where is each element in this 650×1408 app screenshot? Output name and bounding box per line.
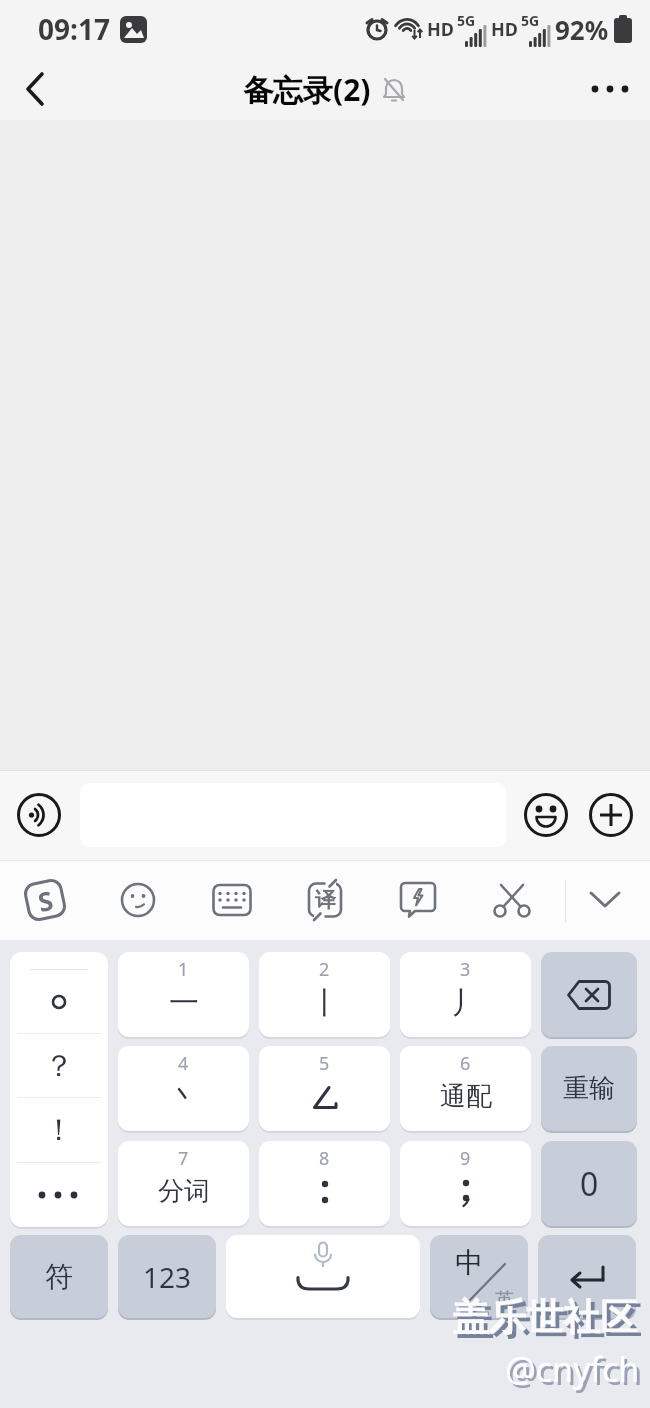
staticText: ！	[44, 1111, 74, 1149]
staticText: 中	[455, 1245, 483, 1280]
staticText: 2	[319, 957, 330, 982]
staticText: 一	[169, 984, 199, 1022]
staticText: HD	[427, 17, 454, 42]
button[interactable]: 5	[259, 1046, 390, 1131]
staticText: S	[35, 882, 56, 919]
button[interactable]	[541, 952, 637, 1037]
staticText: 92%	[555, 12, 609, 47]
staticText: 盖乐世社区	[456, 1298, 641, 1345]
staticText: 备忘录(2)	[243, 69, 371, 110]
button[interactable]	[538, 1235, 636, 1318]
button[interactable]: 123	[118, 1235, 216, 1318]
button[interactable]	[589, 793, 633, 837]
button[interactable]: 符	[10, 1235, 108, 1318]
button[interactable]: 6	[400, 1046, 531, 1131]
button[interactable]: 重输	[541, 1046, 637, 1131]
staticText: @cnyfch	[505, 1346, 640, 1392]
button[interactable]	[524, 793, 568, 837]
staticText: 5G	[521, 11, 540, 30]
staticText: 丨	[310, 984, 340, 1022]
staticText: 5G	[457, 11, 476, 30]
button[interactable]	[576, 871, 634, 929]
staticText: 通配	[440, 1080, 492, 1113]
button[interactable]: ！	[10, 1098, 108, 1162]
staticText: 1	[178, 957, 189, 982]
button[interactable]	[10, 1163, 108, 1227]
staticText: @cnyfch	[508, 1349, 643, 1395]
staticText: 丿	[451, 984, 481, 1022]
button[interactable]	[17, 793, 61, 837]
staticText: 符	[45, 1259, 73, 1294]
staticText: ？	[44, 1047, 74, 1085]
button[interactable]	[389, 871, 447, 929]
staticText: 丶	[169, 1078, 199, 1116]
button[interactable]: 0	[541, 1141, 637, 1226]
button[interactable]	[203, 871, 261, 929]
staticText: 英	[495, 1288, 514, 1312]
staticText: 译	[315, 887, 336, 913]
staticText: 5	[319, 1051, 330, 1076]
staticText: HD	[491, 17, 518, 42]
staticText: 分词	[158, 1175, 210, 1208]
button[interactable]: 译	[296, 871, 354, 929]
button[interactable]: 8	[259, 1141, 390, 1226]
button[interactable]: ？	[10, 1034, 108, 1097]
button[interactable]: 中	[430, 1235, 528, 1318]
button[interactable]: S	[16, 871, 74, 929]
button[interactable]	[10, 970, 108, 1033]
staticText: 0	[580, 1162, 599, 1206]
button[interactable]	[586, 65, 634, 113]
button[interactable]	[483, 871, 541, 929]
staticText: 盖乐世社区	[452, 1294, 637, 1341]
staticText: 7	[178, 1146, 189, 1171]
button[interactable]: 9	[400, 1141, 531, 1226]
button[interactable]	[16, 69, 56, 109]
staticText: 9	[460, 1146, 471, 1171]
staticText: 3	[460, 957, 471, 982]
button[interactable]: 4	[118, 1046, 249, 1131]
button[interactable]: 7	[118, 1141, 249, 1226]
button[interactable]: 2	[259, 952, 390, 1037]
button[interactable]: 1	[118, 952, 249, 1037]
staticText: 123	[143, 1258, 192, 1296]
button[interactable]: 3	[400, 952, 531, 1037]
button[interactable]	[226, 1235, 420, 1318]
button[interactable]	[109, 871, 167, 929]
staticText: 4	[178, 1051, 189, 1076]
staticText: 6	[460, 1051, 471, 1076]
staticText: 09:17	[38, 10, 110, 48]
staticText: 重输	[563, 1072, 615, 1105]
staticText: 8	[319, 1146, 330, 1171]
